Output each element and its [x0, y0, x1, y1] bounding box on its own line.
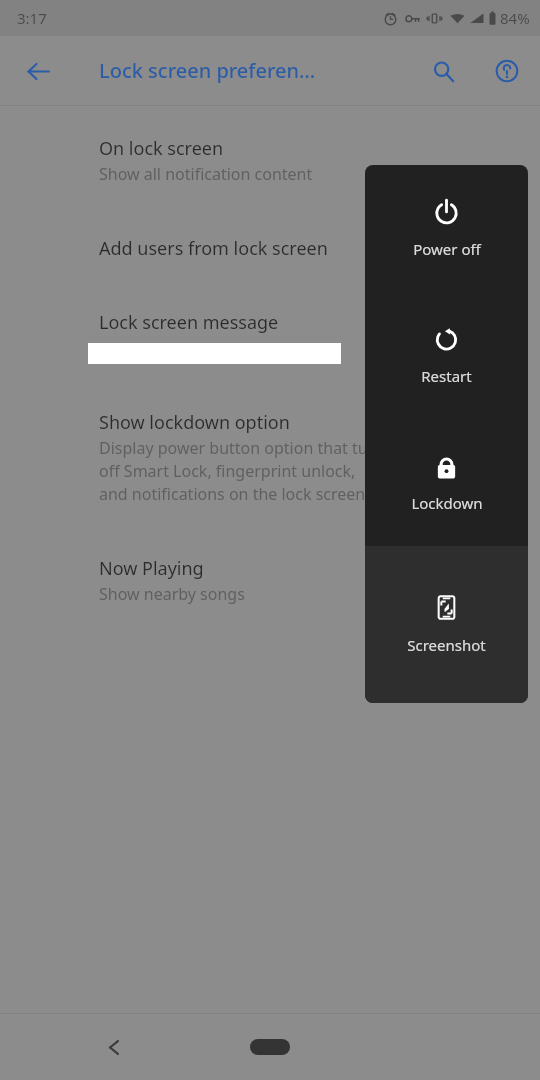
- button[interactable]: Search: [421, 49, 465, 93]
- staticText: Show nearby songs: [99, 583, 245, 605]
- button[interactable]: Lockdown: [365, 419, 528, 546]
- button[interactable]: Home: [250, 1039, 290, 1055]
- button[interactable]: Back: [14, 47, 62, 95]
- button[interactable]: Power off: [365, 165, 528, 292]
- staticText: Lock screen message: [99, 310, 279, 335]
- button[interactable]: Now Playing: [0, 554, 540, 611]
- button[interactable]: On lock screen: [0, 134, 540, 191]
- staticText: Power off: [413, 239, 481, 259]
- staticText: Screenshot: [407, 635, 486, 655]
- staticText: Show lockdown option: [99, 410, 290, 435]
- button[interactable]: Lock screen message: [0, 308, 540, 341]
- staticText: 3:17: [17, 8, 47, 28]
- staticText: Add users from lock screen: [99, 236, 328, 261]
- staticText: 84%: [500, 8, 530, 28]
- button[interactable]: Screenshot: [365, 546, 528, 703]
- staticText: Restart: [421, 366, 472, 386]
- staticText: Display power button option that turns o…: [99, 437, 392, 505]
- staticText: Now Playing: [99, 556, 204, 581]
- staticText: Show all notification content: [99, 163, 313, 185]
- button[interactable]: Add users from lock screen: [0, 234, 540, 267]
- button[interactable]: Show lockdown option: [0, 408, 540, 511]
- staticText: Lockdown: [411, 493, 483, 513]
- staticText: On lock screen: [99, 136, 224, 161]
- staticText: Lock screen preferen…: [99, 57, 316, 84]
- button[interactable]: Back: [94, 1027, 134, 1067]
- button[interactable]: Restart: [365, 292, 528, 419]
- button[interactable]: Help: [485, 49, 529, 93]
